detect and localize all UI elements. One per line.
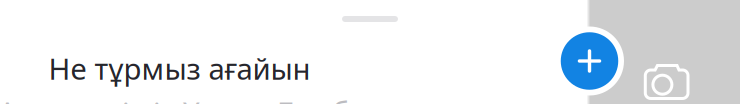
button[interactable]: New message xyxy=(555,26,624,95)
staticText: Ақ дегеніміз Үлкен Дөңбек xyxy=(0,92,382,104)
staticText: Не тұрмыз ағайын xyxy=(48,49,310,88)
